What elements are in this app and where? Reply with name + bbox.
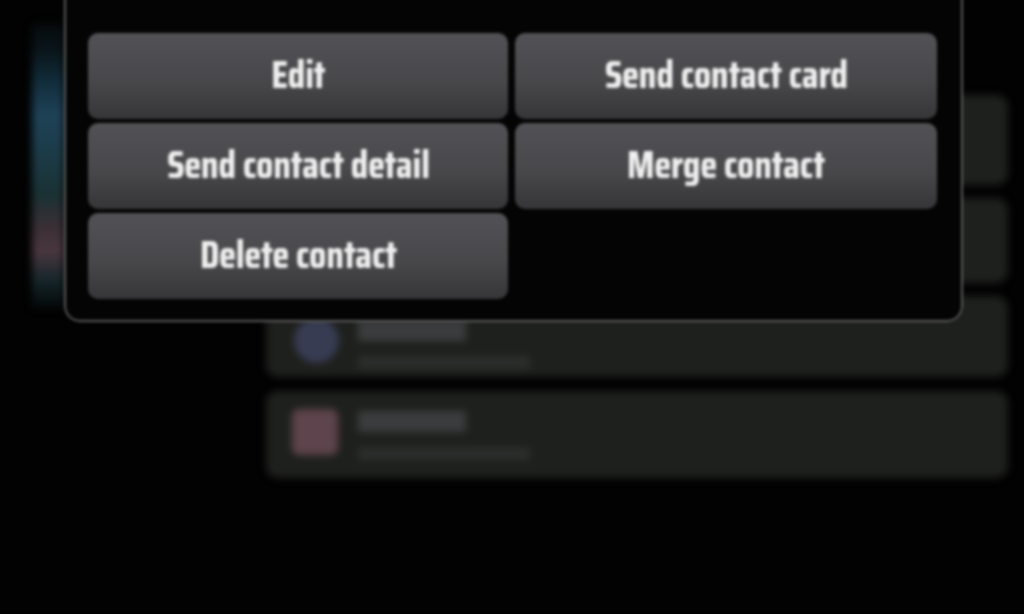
staticText: Merge contact xyxy=(627,134,825,195)
staticText: Edit xyxy=(271,44,326,105)
staticText: Delete contact xyxy=(200,224,397,285)
staticText: Send contact card xyxy=(605,44,848,105)
staticText: Send contact detail xyxy=(167,134,430,195)
button[interactable]: Contact detail row xyxy=(266,198,1008,283)
button[interactable]: Edit xyxy=(88,33,508,119)
button[interactable]: Birthday contact row xyxy=(266,391,1008,478)
button[interactable]: Send contact card xyxy=(515,33,937,119)
button[interactable]: Delete contact xyxy=(88,213,508,299)
button[interactable]: Contact detail row xyxy=(266,95,1008,185)
button[interactable]: Send contact detail xyxy=(88,123,508,209)
button[interactable]: Email contact row xyxy=(266,296,1008,377)
button[interactable]: Merge contact xyxy=(515,123,937,209)
